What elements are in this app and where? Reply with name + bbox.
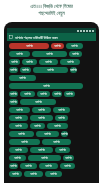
button[interactable]: Select list [9,35,13,39]
button[interactable]: অপশন [9,99,18,105]
staticText: অপশন [58,109,65,112]
button[interactable]: অপশন [45,171,62,177]
button[interactable]: অপশন [9,147,28,153]
staticText: অপশন [25,165,32,168]
button[interactable]: অপশন [64,91,75,97]
staticText: অপশন [15,125,22,128]
button[interactable]: অপশন [9,155,26,161]
staticText: আপনার পছন্দের তালিকাটি নির্বাচন করুন [15,35,58,40]
staticText: অপশন [70,69,77,72]
staticText: অপশন [44,133,51,136]
button[interactable]: অপশন [30,115,53,121]
button[interactable]: অপশন [20,163,37,169]
button[interactable]: অপশন [39,59,58,65]
staticText: এত।।। বিজ্ঞপ্তি থেকে নিজের [30,3,73,10]
button[interactable]: অপশন [9,91,18,97]
staticText: অপশন [41,157,48,160]
button[interactable]: অপশন [66,43,83,49]
staticText: অপশন [45,61,52,64]
staticText: অপশন [26,61,33,64]
staticText: অপশন [40,93,47,96]
button[interactable]: অপশন [60,59,80,65]
staticText: অপশন [53,141,60,144]
button[interactable]: অপশন [28,155,61,161]
staticText: অপশন [43,85,50,88]
staticText: অপশন [30,173,37,176]
button[interactable]: অপশন [9,107,30,113]
button[interactable]: অপশন [36,131,59,137]
button[interactable]: অপশন [9,171,22,177]
staticText: অপশন [14,157,21,160]
staticText: অপশন [21,141,28,144]
button[interactable]: অপশন [30,123,45,129]
button[interactable]: অপশন [55,115,68,121]
button[interactable]: অপশন [47,123,68,129]
button[interactable]: অপশন [63,155,74,161]
button[interactable]: অপশন [9,43,49,49]
button[interactable]: অপশন [9,83,83,89]
button[interactable]: অপশন [61,131,68,137]
button[interactable]: অপশন [37,91,50,97]
button[interactable]: অপশন [9,75,36,81]
staticText: অপশন [61,133,68,136]
button[interactable]: অপশন [53,107,70,113]
staticText: অপশন [16,109,23,112]
staticText: অপশন [24,93,31,96]
button[interactable]: অপশন [39,163,58,169]
staticText: অপশন [34,125,41,128]
button[interactable]: অপশন [55,147,70,153]
staticText: অপশন [38,109,45,112]
staticText: অপশন [26,45,33,48]
button[interactable]: অপশন [33,67,68,73]
staticText: অপশন [58,117,65,120]
staticText: অপশন [10,165,17,168]
button[interactable]: অপশন [30,147,53,153]
staticText: অপশন [47,69,54,72]
button[interactable]: অপশন [22,59,37,65]
button[interactable]: অপশন [70,67,77,73]
button[interactable]: অপশন [9,123,28,129]
staticText: অপশন [38,117,45,120]
button[interactable]: অপশন [24,171,43,177]
staticText: অপশন [50,173,57,176]
staticText: অপশন [19,77,26,80]
button[interactable]: অপশন [51,43,64,49]
staticText: অপশন [12,173,19,176]
staticText: অপশন [18,133,25,136]
staticText: অপশন [45,165,52,168]
button[interactable]: অপশন [60,163,75,169]
button[interactable]: অপশন [9,115,28,121]
button[interactable]: Select list [7,33,96,41]
staticText: অপশন [15,149,22,152]
staticText: অপশন [10,93,17,96]
button[interactable]: অপশন [32,51,67,57]
button[interactable]: অপশন [9,51,30,57]
staticText: অপশন [67,61,74,64]
button[interactable]: অপশন [32,107,51,113]
button[interactable]: অপশন [69,51,82,57]
staticText: অপশন [10,69,17,72]
staticText: অপশন [64,165,71,168]
staticText: অপশন [46,53,53,56]
staticText: অপশন [54,93,61,96]
button[interactable]: অপশন [52,91,62,97]
button[interactable]: অপশন [9,67,18,73]
button[interactable]: অপশন [42,139,71,145]
staticText: অপশন [38,149,45,152]
button[interactable]: অপশন [9,59,20,65]
button[interactable]: অপশন [20,67,31,73]
button[interactable]: অপশন [9,163,18,169]
staticText: অপশন [54,45,61,48]
button[interactable]: অপশন [20,99,56,105]
button[interactable]: অপশন [9,139,40,145]
staticText: অপশন [65,157,72,160]
staticText: অপশন [35,101,42,104]
button[interactable]: অপশন [9,131,34,137]
staticText: অপশন [10,101,17,104]
staticText: অপশন [71,45,78,48]
staticText: অপশন [22,69,29,72]
staticText: অপশন [54,125,61,128]
staticText: অপশন [59,149,66,152]
button[interactable]: অপশন [20,91,35,97]
staticText: অপশন [16,53,23,56]
